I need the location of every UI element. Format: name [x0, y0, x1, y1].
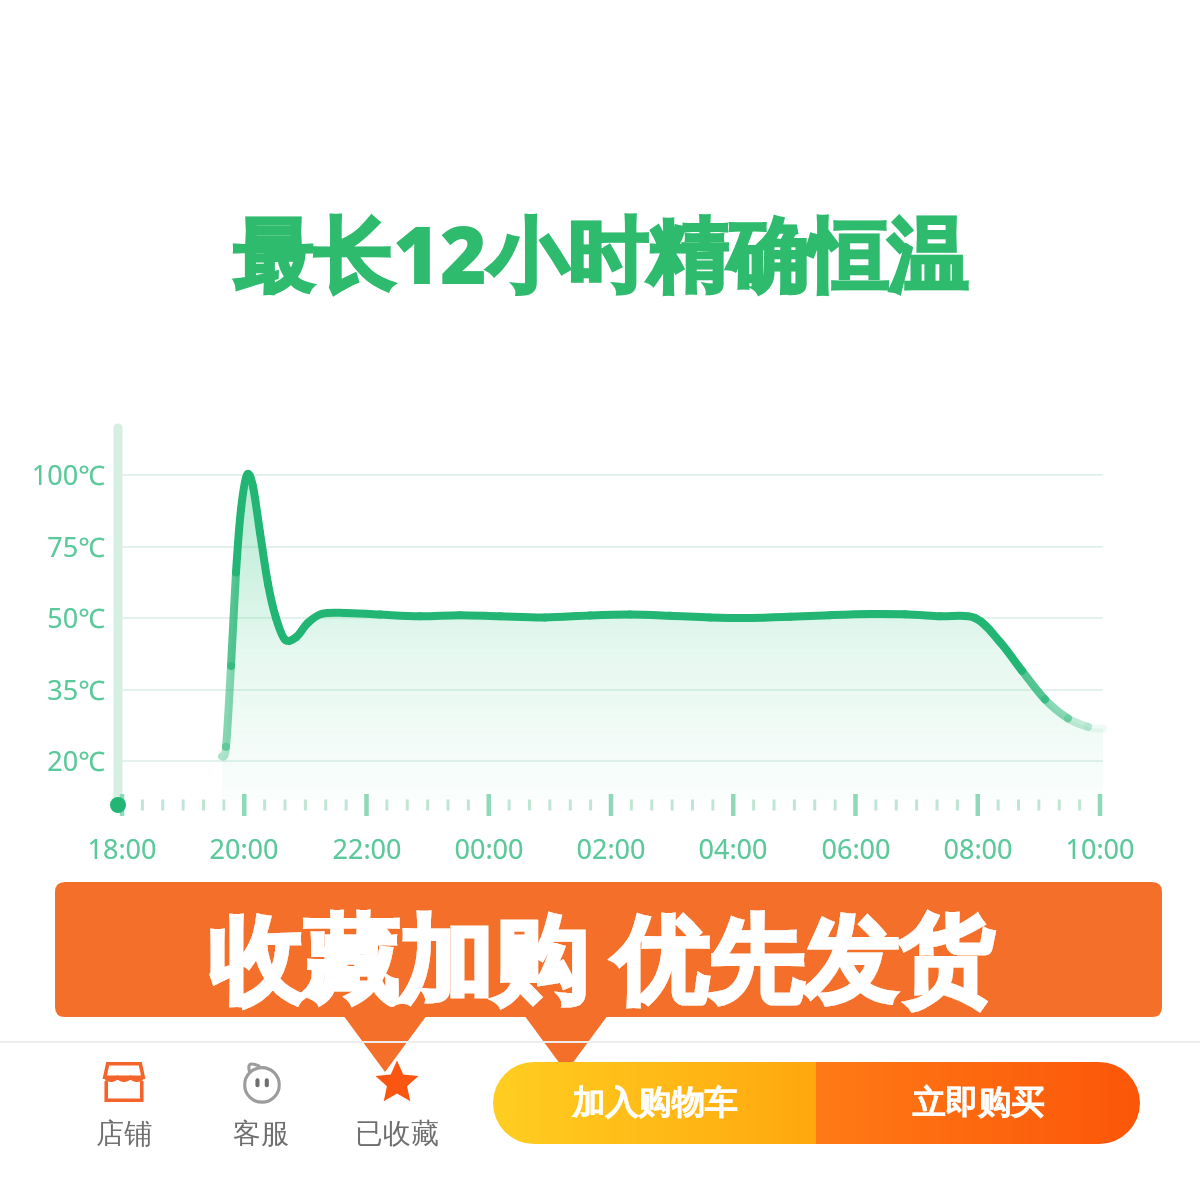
- staticText: 00:00: [414, 830, 564, 867]
- staticText: 35℃: [0, 671, 105, 708]
- staticText: 75℃: [0, 528, 105, 565]
- staticText: 22:00: [292, 830, 442, 867]
- staticText: 02:00: [536, 830, 686, 867]
- staticText: 10:00: [1025, 830, 1175, 867]
- staticText: 店铺: [96, 1116, 152, 1151]
- button[interactable]: Shop: [70, 1056, 178, 1151]
- button[interactable]: Customer service: [207, 1056, 315, 1151]
- staticText: 06:00: [781, 830, 931, 867]
- staticText: 08:00: [903, 830, 1053, 867]
- staticText: 客服: [233, 1116, 289, 1151]
- staticText: 加入购物车: [572, 1082, 737, 1124]
- button[interactable]: 加入购物车: [493, 1062, 816, 1144]
- staticText: 20:00: [169, 830, 319, 867]
- staticText: 20℃: [0, 742, 105, 779]
- staticText: 100℃: [0, 456, 105, 493]
- button[interactable]: 立即购买: [816, 1062, 1140, 1144]
- staticText: 50℃: [0, 599, 105, 636]
- staticText: 04:00: [658, 830, 808, 867]
- staticText: 收藏加购 优先发货: [0, 892, 1200, 1022]
- staticText: 已收藏: [355, 1116, 439, 1151]
- staticText: 18:00: [47, 830, 197, 867]
- staticText: 最长12小时精确恒温: [0, 198, 1200, 307]
- button[interactable]: Favorited: [343, 1056, 451, 1151]
- staticText: 立即购买: [912, 1082, 1044, 1124]
